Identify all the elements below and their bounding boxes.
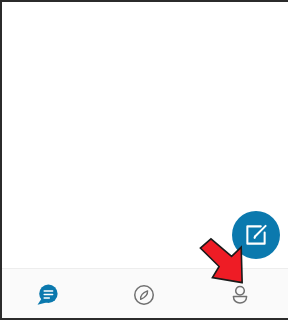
button[interactable]: Compose new message xyxy=(232,211,280,259)
button[interactable]: Discover xyxy=(96,269,192,320)
button[interactable]: Chats xyxy=(0,269,96,320)
button[interactable]: Profile xyxy=(192,269,288,320)
